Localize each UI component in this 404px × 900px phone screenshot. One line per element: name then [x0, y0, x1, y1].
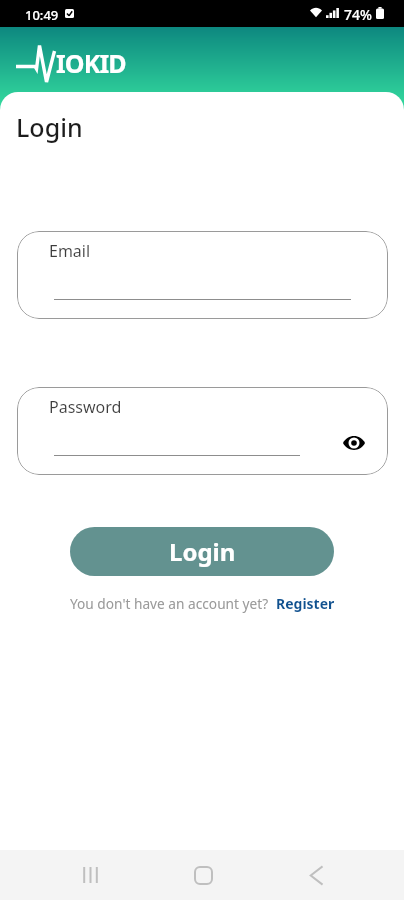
staticText: IOKID — [56, 46, 126, 80]
button[interactable]: Login — [70, 527, 334, 576]
button[interactable]: Register — [276, 594, 335, 613]
staticText: 74% — [344, 5, 372, 24]
staticText: Password — [49, 396, 122, 418]
staticText: Register — [276, 594, 335, 613]
staticText: Login — [16, 110, 83, 144]
staticText: Email — [49, 240, 91, 262]
staticText: Login — [169, 535, 236, 568]
button[interactable]: Email — [17, 231, 388, 319]
button[interactable]: Back — [288, 850, 344, 900]
staticText: 10:49 — [25, 6, 59, 24]
button[interactable]: Home — [175, 850, 231, 900]
staticText: You don't have an account yet? — [70, 594, 269, 613]
button[interactable]: Recents — [62, 850, 118, 900]
button[interactable]: Password — [17, 387, 388, 475]
button[interactable]: Show password — [341, 430, 367, 456]
